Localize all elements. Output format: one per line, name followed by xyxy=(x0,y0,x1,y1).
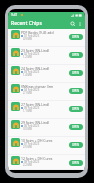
staticText: 1.2 MB xyxy=(23,55,32,59)
staticText: 2.5 MB xyxy=(23,145,32,149)
staticText: 2.2 MB xyxy=(23,163,32,167)
staticText: 27 Spim (SN-Lind) xyxy=(21,102,67,107)
button[interactable]: OPEN xyxy=(69,124,83,130)
staticText: PDF Books (9.45 adc) xyxy=(21,30,67,35)
staticText: OPEN xyxy=(72,35,80,39)
staticText: 12 Spim + DH Cures xyxy=(21,156,67,161)
staticText: 03 Feb 2023 xyxy=(24,70,40,74)
staticText: 02 Feb 2023 xyxy=(24,52,40,56)
button[interactable]: 24 Spim (SN-Lind) xyxy=(8,65,85,83)
staticText: 05 Feb 2023 xyxy=(24,106,40,110)
staticText: OPEN xyxy=(72,143,80,147)
button[interactable]: 12 Spim + DH Cures xyxy=(8,155,85,170)
staticText: 01 Feb 2023 xyxy=(24,34,40,38)
button[interactable]: 27 Spim (SN-Lind) xyxy=(8,101,85,119)
staticText: 4.9 MB xyxy=(23,37,32,41)
button[interactable]: OPEN xyxy=(69,160,83,166)
button[interactable]: OPEN xyxy=(69,142,83,148)
button[interactable]: PDF Books (9.45 adc) xyxy=(8,29,85,47)
staticText: OPEN xyxy=(72,107,80,111)
button[interactable]: Search xyxy=(69,20,76,27)
button[interactable]: OPEN xyxy=(69,52,83,58)
staticText: 2.1 MB xyxy=(23,91,32,95)
staticText: 24 Spim (SN-Lind) xyxy=(21,66,67,71)
staticText: 23 Spim (SN-Lind) xyxy=(21,48,67,53)
button[interactable]: OPEN xyxy=(69,70,83,76)
staticText: OPEN xyxy=(72,125,80,129)
staticText: 10 Spim + DH Cures xyxy=(21,138,67,143)
staticText: 06 Feb 2023 xyxy=(24,124,40,128)
button[interactable]: OPEN xyxy=(69,106,83,112)
staticText: OPEN xyxy=(72,89,80,93)
button[interactable]: More options xyxy=(76,20,83,27)
staticText: Recent Chips xyxy=(11,20,42,27)
staticText: 9:41 xyxy=(11,13,18,17)
button[interactable]: 10 Spim + DH Cures xyxy=(8,137,85,155)
button[interactable]: VNXtras ctsesar 3rm xyxy=(8,83,85,101)
staticText: 08 Feb 2023 xyxy=(24,160,40,164)
button[interactable]: OPEN xyxy=(69,88,83,94)
staticText: 1.4 MB xyxy=(23,73,32,77)
staticText: VNXtras ctsesar 3rm xyxy=(21,84,67,89)
staticText: 29 Spim (SN-Lind) xyxy=(21,120,67,125)
button[interactable]: 29 Spim (SN-Lind) xyxy=(8,119,85,137)
staticText: OPEN xyxy=(72,71,80,75)
staticText: OPEN xyxy=(72,161,80,165)
button[interactable]: OPEN xyxy=(69,34,83,40)
staticText: OPEN xyxy=(72,53,80,57)
staticText: 3.0 MB xyxy=(23,127,32,131)
staticText: 1.1 MB xyxy=(23,109,32,113)
button[interactable]: 23 Spim (SN-Lind) xyxy=(8,47,85,65)
staticText: 07 Feb 2023 xyxy=(24,142,40,146)
staticText: 04 Feb 2023 xyxy=(24,88,40,92)
